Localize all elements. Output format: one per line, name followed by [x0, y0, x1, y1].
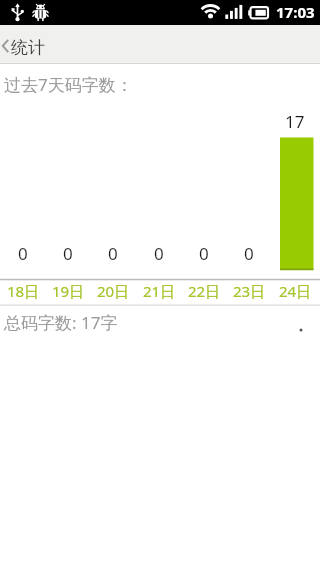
staticText: 0: [18, 242, 28, 265]
staticText: 20日: [97, 281, 130, 301]
staticText: 过去7天码字数：: [4, 73, 133, 96]
staticText: 22日: [188, 281, 221, 301]
staticText: 21日: [143, 281, 176, 301]
staticText: 23日: [233, 281, 266, 301]
staticText: 18日: [7, 281, 40, 301]
staticText: 总码字数: 17字: [4, 311, 118, 334]
staticText: 0: [108, 242, 118, 265]
staticText: 0: [154, 242, 164, 265]
staticText: 24日: [279, 281, 312, 301]
staticText: 统计: [11, 37, 45, 58]
button[interactable]: 统计: [0, 25, 320, 63]
staticText: 19日: [52, 281, 85, 301]
staticText: 0: [244, 242, 254, 265]
staticText: 17:03: [276, 2, 315, 22]
staticText: 0: [63, 242, 73, 265]
staticText: 0: [199, 242, 209, 265]
staticText: 17: [285, 110, 305, 133]
